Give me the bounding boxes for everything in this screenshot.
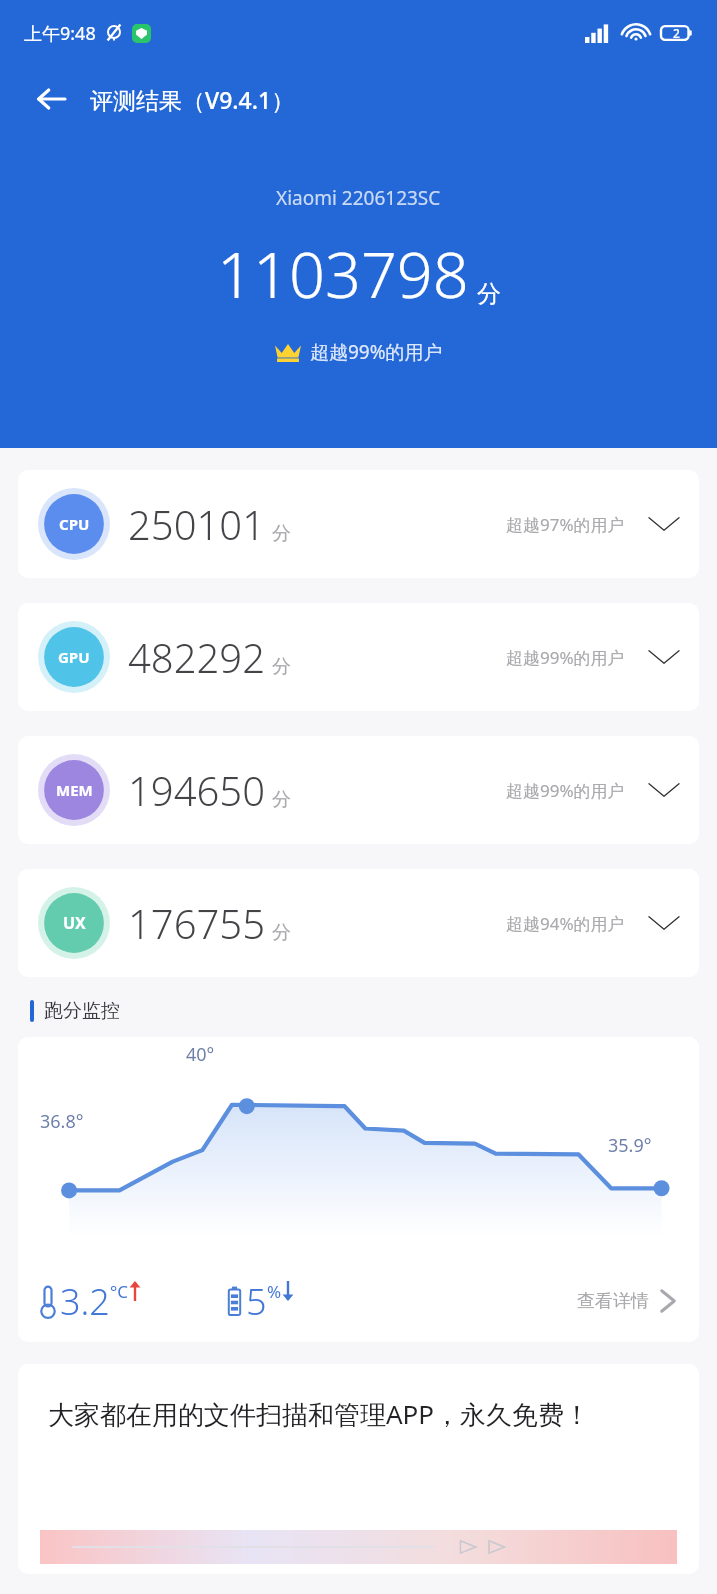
staticText: 40° [186,1042,215,1067]
button[interactable]: 36.8° [18,1037,699,1342]
staticText: 分 [477,279,501,309]
staticText: Xiaomi 2206123SC [276,185,441,211]
staticText: 超越94%的用户 [506,912,625,935]
button[interactable]: 查看详情 [577,1285,677,1317]
staticText: 查看详情 [577,1290,649,1313]
staticText: 35.9° [608,1133,652,1158]
staticText: 超越99%的用户 [506,779,625,802]
button[interactable]: MEM [18,736,699,844]
staticText: 超越99%的用户 [506,646,625,669]
staticText: 250101 [128,497,266,551]
staticText: 1103798 [217,231,469,317]
staticText: 36.8° [40,1109,84,1134]
staticText: % [267,1280,282,1303]
staticText: 176755 [128,896,266,950]
staticText: 超越99%的用户 [310,339,443,365]
staticText: 评测结果（V9.4.1） [90,84,295,115]
staticText: °C [110,1280,129,1303]
staticText: 分 [272,655,291,679]
staticText: MEM [56,780,93,800]
staticText: 194650 [128,763,266,817]
staticText: GPU [58,647,90,667]
staticText: 482292 [128,630,266,684]
staticText: 上午9:48 [24,21,96,46]
staticText: 分 [272,788,291,812]
staticText: CPU [59,514,90,534]
staticText: 超越97%的用户 [506,513,625,536]
staticText: 3.2 [60,1277,110,1326]
button[interactable]: 大家都在用的文件扫描和管理APP，永久免费！ [18,1364,699,1574]
staticText: 跑分监控 [44,999,120,1023]
staticText: 2 [673,25,680,41]
button[interactable]: Back [28,76,74,122]
staticText: UX [63,912,86,934]
button[interactable]: CPU [18,470,699,578]
staticText: 大家都在用的文件扫描和管理APP，永久免费！ [48,1396,591,1432]
button[interactable]: GPU [18,603,699,711]
staticText: 分 [272,522,291,546]
staticText: 分 [272,921,291,945]
button[interactable]: UX [18,869,699,977]
staticText: 5 [246,1277,267,1326]
